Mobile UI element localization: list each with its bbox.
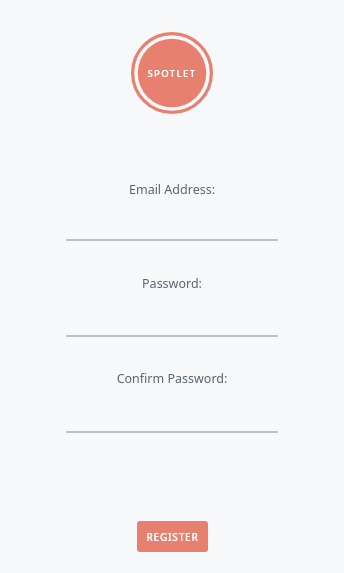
staticText: REGISTER: [146, 530, 199, 544]
button[interactable]: Email Address input: [66, 225, 278, 241]
staticText: Password:: [0, 275, 344, 292]
other: Spotlet logo: [131, 32, 213, 114]
button[interactable]: Confirm Password input: [66, 417, 278, 433]
staticText: Confirm Password:: [0, 370, 344, 387]
button[interactable]: REGISTER: [137, 521, 208, 552]
staticText: SPOTLET: [147, 67, 197, 80]
staticText: Email Address:: [0, 181, 344, 198]
button[interactable]: Password input: [66, 321, 278, 337]
